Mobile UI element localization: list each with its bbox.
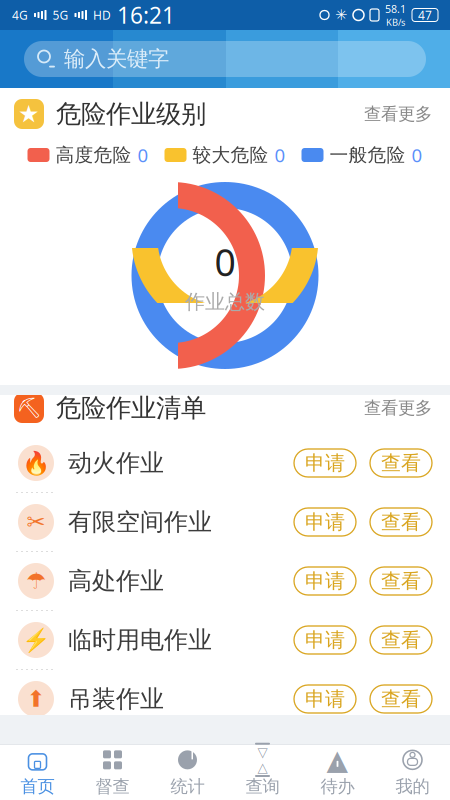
button[interactable]: 我的 bbox=[375, 745, 450, 800]
staticText: 申请 bbox=[305, 628, 345, 652]
staticText: 有限空间作业 bbox=[68, 507, 212, 537]
button[interactable]: ▽ bbox=[225, 745, 300, 800]
button[interactable]: 查看 bbox=[370, 449, 432, 477]
staticText: KB/s bbox=[386, 16, 405, 28]
staticText: ▲ bbox=[326, 744, 348, 776]
staticText: ⚡ bbox=[22, 627, 50, 653]
staticText: 0 bbox=[274, 143, 285, 167]
button[interactable]: 申请 bbox=[294, 449, 356, 477]
staticText: 高度危险 bbox=[55, 143, 131, 166]
staticText: 47 bbox=[418, 7, 432, 23]
staticText: 查看 bbox=[381, 451, 421, 475]
staticText: ⛏ bbox=[16, 397, 41, 419]
staticText: 查看 bbox=[381, 687, 421, 711]
staticText: 5G bbox=[52, 7, 68, 23]
staticText: 查询 bbox=[245, 776, 279, 797]
staticText: 查看更多 bbox=[364, 103, 432, 125]
staticText: 查看更多 bbox=[364, 397, 432, 419]
button[interactable]: 申请 bbox=[294, 567, 356, 595]
staticText: ⬆ bbox=[26, 686, 45, 712]
staticText: 0 bbox=[214, 237, 235, 286]
button[interactable]: ▲ bbox=[300, 745, 375, 800]
staticText: 统计 bbox=[170, 776, 204, 797]
staticText: ✳ bbox=[335, 7, 347, 23]
staticText: 查看 bbox=[381, 628, 421, 652]
button[interactable]: 查看 bbox=[370, 567, 432, 595]
button[interactable]: 督查 bbox=[75, 745, 150, 800]
button[interactable]: 申请 bbox=[294, 508, 356, 536]
button[interactable]: 查看更多 bbox=[360, 97, 436, 131]
button[interactable]: 首页 bbox=[0, 745, 75, 800]
staticText: 58.1 bbox=[385, 2, 406, 16]
staticText: ▽ bbox=[257, 745, 267, 760]
button[interactable]: 查看 bbox=[370, 685, 432, 713]
staticText: 输入关键字 bbox=[64, 46, 169, 72]
button[interactable]: 查看 bbox=[370, 508, 432, 536]
staticText: ☂ bbox=[26, 568, 46, 594]
staticText: 4G bbox=[12, 7, 28, 23]
button[interactable]: 申请 bbox=[294, 685, 356, 713]
staticText: 查看 bbox=[381, 510, 421, 534]
staticText: 16:21 bbox=[117, 0, 175, 30]
staticText: 首页 bbox=[20, 776, 54, 797]
staticText: 一般危险 bbox=[329, 143, 405, 166]
staticText: 吊装作业 bbox=[68, 684, 164, 714]
staticText: 危险作业级别 bbox=[56, 98, 206, 129]
staticText: 危险作业清单 bbox=[56, 392, 206, 423]
staticText: 🔥 bbox=[22, 450, 50, 476]
staticText: 高处作业 bbox=[68, 566, 164, 596]
staticText: 0 bbox=[137, 143, 148, 167]
staticText: 申请 bbox=[305, 569, 345, 593]
staticText: 较大危险 bbox=[192, 143, 268, 166]
staticText: HD bbox=[93, 7, 111, 23]
staticText: 我的 bbox=[395, 776, 429, 797]
staticText: 申请 bbox=[305, 451, 345, 475]
button[interactable]: 查看 bbox=[370, 626, 432, 654]
staticText: 督查 bbox=[95, 776, 129, 797]
staticText: 申请 bbox=[305, 687, 345, 711]
staticText: 待办 bbox=[320, 776, 354, 797]
staticText: 0 bbox=[411, 143, 422, 167]
button[interactable]: 查看更多 bbox=[360, 391, 436, 425]
button[interactable]: 输入关键字 bbox=[24, 41, 426, 77]
button[interactable]: 申请 bbox=[294, 626, 356, 654]
staticText: △ bbox=[257, 760, 267, 775]
staticText: ★ bbox=[18, 100, 40, 128]
staticText: ✂ bbox=[26, 509, 45, 535]
staticText: 动火作业 bbox=[68, 448, 164, 478]
staticText: 临时用电作业 bbox=[68, 625, 212, 655]
staticText: 申请 bbox=[305, 510, 345, 534]
staticText: 查看 bbox=[381, 569, 421, 593]
button[interactable]: 统计 bbox=[150, 745, 225, 800]
staticText: 作业总数 bbox=[185, 289, 265, 314]
